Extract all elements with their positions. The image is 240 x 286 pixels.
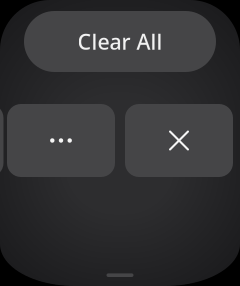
button[interactable]: Clear All [24, 11, 216, 72]
button[interactable]: More options [7, 104, 115, 177]
button[interactable]: Dismiss [125, 104, 233, 177]
staticText: Clear All [77, 27, 162, 56]
button[interactable]: Previous action [0, 104, 3, 177]
